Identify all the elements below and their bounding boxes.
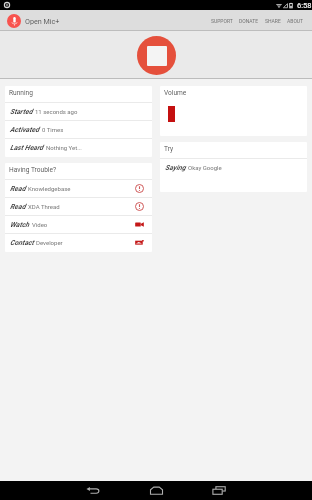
- staticText: Having Trouble?: [9, 166, 57, 174]
- staticText: Okay Google: [188, 164, 222, 171]
- staticText: 6:58: [297, 1, 312, 10]
- staticText: Volume: [164, 89, 187, 97]
- staticText: Video: [32, 221, 48, 228]
- staticText: DONATE: [239, 18, 259, 24]
- staticText: Running: [9, 89, 33, 97]
- button[interactable]: Recent apps: [199, 481, 239, 500]
- button[interactable]: ABOUT: [284, 10, 307, 31]
- button[interactable]: Stop listening: [137, 36, 176, 75]
- button[interactable]: Last Heard: [5, 139, 152, 156]
- button[interactable]: Back: [73, 481, 113, 500]
- button[interactable]: Contact: [5, 234, 152, 251]
- staticText: Watch: [10, 221, 30, 229]
- staticText: Nothing Yet...: [46, 144, 82, 151]
- staticText: 0 Times: [42, 126, 64, 133]
- staticText: Read: [10, 185, 26, 193]
- button[interactable]: Open Mic app icon: [7, 14, 21, 28]
- staticText: 11 seconds ago: [35, 108, 78, 115]
- staticText: Read: [10, 203, 26, 211]
- staticText: Last Heard: [10, 144, 44, 152]
- button[interactable]: Read: [5, 198, 152, 215]
- button[interactable]: DONATE: [236, 10, 262, 31]
- staticText: SHARE: [265, 18, 281, 24]
- button[interactable]: Saying: [160, 159, 307, 176]
- button[interactable]: Activated: [5, 121, 152, 138]
- staticText: Saying: [165, 164, 186, 172]
- staticText: Activated: [10, 126, 40, 134]
- staticText: Developer: [36, 239, 63, 246]
- button[interactable]: Read: [5, 180, 152, 197]
- button[interactable]: Watch: [5, 216, 152, 233]
- staticText: Started: [10, 108, 33, 116]
- staticText: ABOUT: [287, 18, 304, 24]
- staticText: SUPPORT: [211, 18, 233, 24]
- button[interactable]: Started: [5, 103, 152, 120]
- button[interactable]: SHARE: [262, 10, 284, 31]
- button[interactable]: Home: [136, 481, 176, 500]
- staticText: Knowledgebase: [28, 185, 71, 192]
- staticText: XDA Thread: [28, 203, 60, 210]
- staticText: Open Mic+: [25, 17, 60, 25]
- staticText: Contact: [10, 239, 34, 247]
- staticText: Try: [164, 145, 174, 153]
- button[interactable]: SUPPORT: [208, 10, 236, 31]
